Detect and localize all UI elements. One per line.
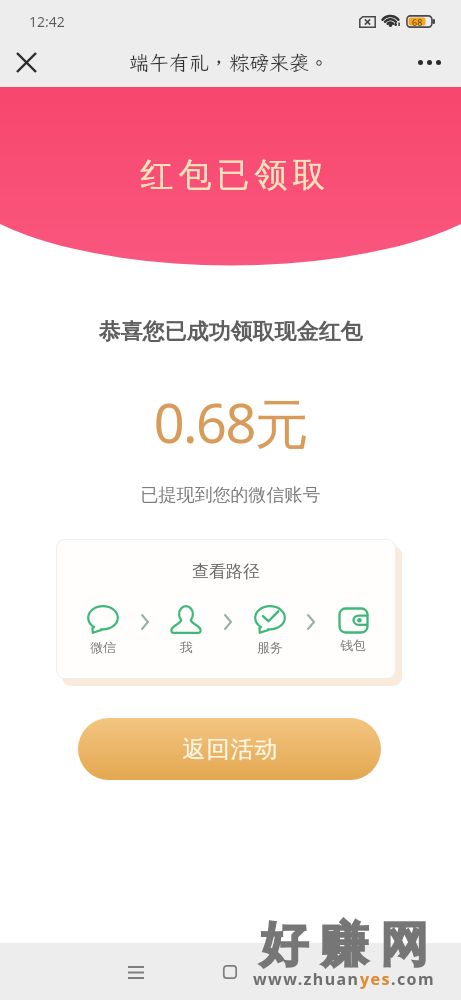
staticText: 好赚网	[254, 915, 434, 975]
staticText: 服务	[257, 639, 283, 655]
button[interactable]: 我	[162, 605, 210, 655]
staticText: 12:42	[29, 12, 65, 31]
staticText: 我	[180, 639, 193, 655]
button[interactable]: 返回活动	[78, 718, 381, 780]
staticText: .com	[391, 968, 435, 990]
staticText: 查看路径	[192, 561, 260, 582]
staticText: www.zhuan	[253, 968, 360, 990]
button[interactable]: Home	[207, 949, 253, 995]
staticText: yes	[360, 968, 391, 990]
button[interactable]: 微信	[79, 605, 127, 655]
button[interactable]: 钱包	[329, 605, 377, 653]
button[interactable]: 服务	[246, 605, 294, 655]
staticText: 红包已领取	[138, 154, 328, 196]
button[interactable]: Recent apps	[113, 949, 159, 995]
staticText: 端午有礼，粽磅来袭。	[129, 49, 329, 75]
staticText: 已提现到您的微信账号	[0, 484, 461, 507]
staticText: 68	[412, 16, 423, 28]
staticText: 恭喜您已成功领取现金红包	[0, 318, 461, 346]
staticText: 返回活动	[182, 735, 278, 764]
button[interactable]: Close	[4, 40, 48, 84]
staticText: 0.68元	[0, 385, 461, 459]
staticText: 钱包	[340, 637, 366, 653]
staticText: 微信	[90, 639, 116, 655]
button[interactable]: More options	[407, 40, 451, 84]
